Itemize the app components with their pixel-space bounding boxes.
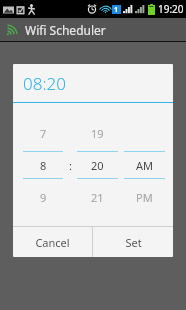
staticText: : bbox=[69, 158, 72, 173]
staticText: 19 bbox=[91, 126, 104, 141]
staticText: 08:20 bbox=[23, 72, 66, 95]
button[interactable]: Set bbox=[93, 227, 173, 257]
staticText: Wifi Scheduler bbox=[25, 22, 106, 38]
staticText: Cancel bbox=[35, 235, 70, 250]
staticText: Set bbox=[125, 235, 142, 250]
staticText: 8 bbox=[40, 158, 47, 173]
button[interactable]: 19 bbox=[77, 110, 118, 220]
staticText: 1 bbox=[114, 5, 119, 14]
staticText: 9 bbox=[40, 190, 47, 205]
staticText: 21 bbox=[91, 190, 104, 205]
button[interactable]: Cancel bbox=[13, 227, 92, 257]
button[interactable]: AM bbox=[124, 110, 165, 220]
staticText: 7 bbox=[40, 126, 47, 141]
staticText: 20 bbox=[91, 158, 104, 173]
staticText: AM bbox=[136, 158, 154, 173]
button[interactable]: 7 bbox=[23, 110, 63, 220]
staticText: 19:20 bbox=[158, 2, 184, 16]
staticText: PM bbox=[136, 190, 153, 205]
